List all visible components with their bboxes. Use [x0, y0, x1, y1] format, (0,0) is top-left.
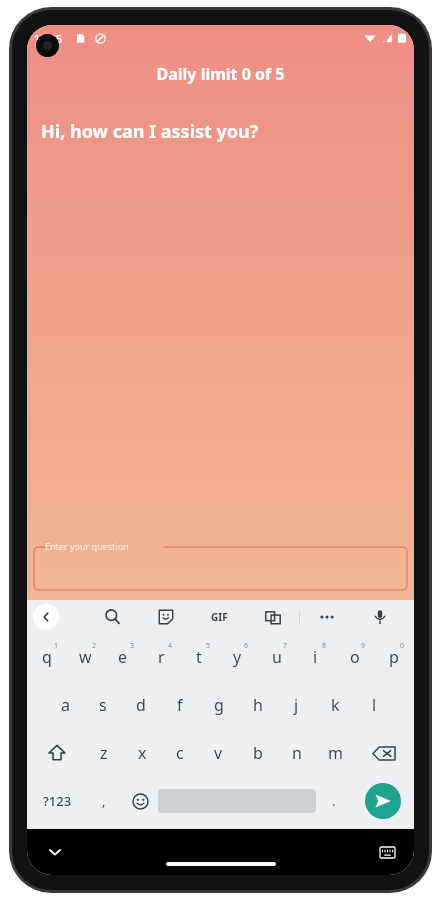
button[interactable]: t — [180, 633, 218, 681]
staticText: GIF — [211, 610, 228, 624]
button[interactable]: c — [161, 729, 199, 777]
staticText: , — [102, 792, 106, 810]
staticText: 0 — [400, 641, 405, 651]
button[interactable]: GIF — [193, 600, 246, 633]
staticText: q — [42, 646, 52, 668]
staticText: 5 — [206, 641, 211, 651]
button[interactable]: r — [142, 633, 180, 681]
staticText: l — [372, 694, 377, 716]
button[interactable]: b — [238, 729, 277, 777]
button[interactable]: i — [296, 633, 335, 681]
staticText: r — [158, 646, 165, 668]
button[interactable]: g — [199, 681, 238, 729]
staticText: j — [294, 694, 299, 716]
button[interactable]: o — [335, 633, 374, 681]
button[interactable]: u — [257, 633, 296, 681]
staticText: 8 — [322, 641, 327, 651]
staticText: 3 — [130, 641, 135, 651]
button[interactable]: a — [46, 681, 84, 729]
button[interactable]: q — [28, 633, 66, 681]
button[interactable]: l — [355, 681, 394, 729]
staticText: g — [214, 694, 224, 716]
button[interactable]: Backspace — [355, 729, 413, 777]
staticText: x — [138, 742, 147, 764]
staticText: t — [196, 646, 202, 668]
staticText: p — [389, 646, 399, 668]
staticText: 2 — [92, 641, 97, 651]
button[interactable]: y — [218, 633, 257, 681]
staticText: 12:25 — [34, 31, 63, 46]
button[interactable]: Hide keyboard — [41, 838, 69, 866]
button[interactable]: Shift — [28, 729, 85, 777]
staticText: f — [177, 694, 183, 716]
button[interactable]: Voice input — [353, 600, 406, 633]
staticText: h — [253, 694, 263, 716]
button[interactable]: Back — [33, 604, 59, 630]
button[interactable]: Enter your question — [34, 540, 407, 590]
button[interactable]: w — [66, 633, 104, 681]
staticText: Daily limit 0 of 5 — [27, 63, 414, 85]
button[interactable]: p — [374, 633, 413, 681]
staticText: 4 — [168, 641, 173, 651]
staticText: k — [331, 694, 340, 716]
staticText: d — [136, 694, 146, 716]
button[interactable]: h — [238, 681, 277, 729]
staticText: 9 — [361, 641, 366, 651]
staticText: e — [118, 646, 128, 668]
button[interactable]: d — [122, 681, 160, 729]
staticText: c — [176, 742, 184, 764]
staticText: m — [328, 742, 343, 764]
button[interactable]: n — [277, 729, 316, 777]
staticText: s — [99, 694, 107, 716]
button[interactable]: Switch keyboard — [374, 839, 400, 865]
button[interactable]: Send — [365, 783, 401, 819]
staticText: a — [61, 694, 70, 716]
button[interactable]: k — [316, 681, 355, 729]
staticText: ?123 — [43, 792, 72, 810]
button[interactable] — [166, 862, 276, 866]
staticText: 6 — [244, 641, 249, 651]
button[interactable]: Translate — [246, 600, 299, 633]
button[interactable]: x — [123, 729, 161, 777]
button[interactable]: v — [199, 729, 238, 777]
button[interactable]: ?123 — [28, 777, 86, 825]
button[interactable]: , — [86, 777, 122, 825]
staticText: . — [332, 792, 336, 810]
button[interactable]: . — [316, 777, 352, 825]
staticText: n — [292, 742, 302, 764]
button[interactable]: Stickers — [139, 600, 193, 633]
staticText: i — [313, 646, 318, 668]
staticText: Hi, how can I assist you? — [41, 119, 259, 144]
staticText: z — [100, 742, 108, 764]
button[interactable]: m — [316, 729, 355, 777]
button[interactable]: j — [277, 681, 316, 729]
staticText: 7 — [283, 641, 288, 651]
staticText: w — [79, 646, 92, 668]
staticText: Enter your question — [45, 540, 129, 552]
staticText: o — [350, 646, 360, 668]
button[interactable]: s — [84, 681, 122, 729]
staticText: b — [253, 742, 263, 764]
staticText: u — [272, 646, 282, 668]
button[interactable]: e — [104, 633, 142, 681]
staticText: v — [214, 742, 223, 764]
button[interactable]: Search — [85, 600, 139, 633]
button[interactable]: More options — [300, 600, 353, 633]
button[interactable]: z — [85, 729, 123, 777]
button[interactable]: f — [160, 681, 199, 729]
staticText: y — [233, 646, 242, 668]
button[interactable]: Emoji — [122, 777, 158, 825]
staticText: 1 — [54, 641, 59, 651]
